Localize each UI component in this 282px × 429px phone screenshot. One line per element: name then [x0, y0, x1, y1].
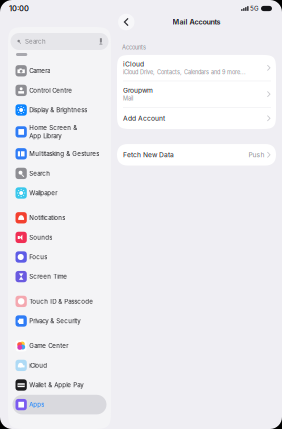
staticText: Privacy & Security — [29, 317, 80, 325]
staticText: Push — [248, 151, 264, 159]
staticText: 10:00 — [9, 4, 29, 13]
button[interactable]: Home Screen & — [8, 120, 111, 144]
staticText: Search — [25, 38, 46, 45]
staticText: iCloud Drive, Contacts, Calendars and 9 … — [123, 69, 246, 76]
button[interactable]: iCloud — [117, 55, 276, 81]
button[interactable]: Privacy & Security — [8, 311, 111, 331]
staticText: Touch ID & Passcode — [29, 298, 93, 305]
button[interactable]: Screen Time — [8, 267, 111, 286]
staticText: Display & Brightness — [29, 106, 87, 114]
staticText: 5G — [250, 5, 259, 12]
staticText: Mail Accounts — [172, 18, 220, 26]
staticText: Control Centre — [29, 87, 72, 94]
staticText: Game Center — [29, 342, 68, 349]
button[interactable]: Wallpaper — [8, 183, 111, 203]
button[interactable]: Add Account — [117, 107, 276, 129]
staticText: iCloud — [123, 60, 144, 68]
button[interactable]: Back — [118, 14, 134, 30]
button[interactable]: Wallet & Apple Pay — [8, 375, 111, 395]
staticText: Wallpaper — [29, 189, 57, 197]
staticText: Screen Time — [29, 273, 67, 280]
staticText: iCloud — [29, 362, 47, 369]
staticText: Apps — [29, 401, 44, 408]
button[interactable]: Apps — [8, 395, 111, 414]
button[interactable]: Focus — [8, 247, 111, 267]
button[interactable]: Notifications — [8, 208, 111, 228]
button[interactable]: Camera — [8, 61, 111, 81]
button[interactable]: Fetch New Data — [117, 144, 276, 165]
staticText: Multitasking & Gestures — [29, 150, 99, 157]
staticText: Mail — [123, 95, 133, 102]
button[interactable]: Control Centre — [8, 81, 111, 100]
button[interactable]: Groupwm — [117, 81, 276, 107]
staticText: App Library — [29, 132, 61, 140]
staticText: Groupwm — [123, 86, 153, 94]
staticText: Search — [29, 170, 50, 177]
staticText: Fetch New Data — [123, 151, 174, 159]
staticText: Home Screen & — [29, 124, 77, 131]
staticText: Add Account — [123, 114, 165, 122]
staticText: Sounds — [29, 234, 52, 241]
button[interactable]: Display & Brightness — [8, 100, 111, 120]
button[interactable]: iCloud — [8, 356, 111, 375]
button[interactable]: Search — [8, 164, 111, 183]
button[interactable]: Game Center — [8, 336, 111, 356]
button[interactable]: Touch ID & Passcode — [8, 292, 111, 311]
staticText: Accounts — [122, 44, 146, 51]
staticText: Wallet & Apple Pay — [29, 381, 83, 389]
button[interactable]: Sounds — [8, 228, 111, 247]
staticText: Notifications — [29, 214, 65, 221]
button[interactable]: Multitasking & Gestures — [8, 144, 111, 164]
staticText: Focus — [29, 253, 47, 261]
staticText: Camera — [29, 67, 50, 74]
